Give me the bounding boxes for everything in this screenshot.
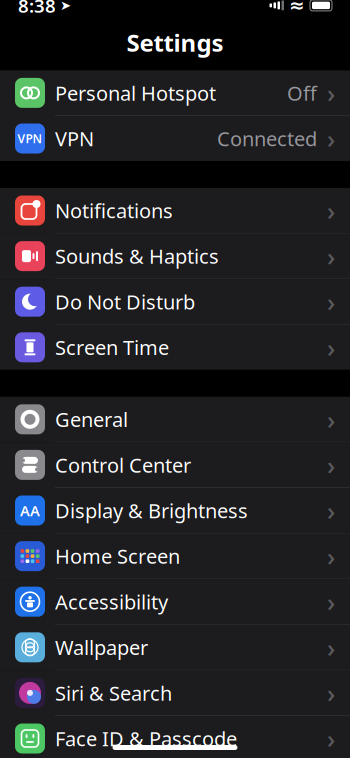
button[interactable]: Siri & Search bbox=[0, 670, 350, 716]
staticText: Control Center bbox=[55, 452, 191, 478]
staticText: Screen Time bbox=[55, 334, 169, 361]
staticText: › bbox=[327, 539, 335, 573]
staticText: › bbox=[327, 630, 335, 664]
staticText: Display & Brightness bbox=[55, 497, 248, 524]
staticText: › bbox=[327, 285, 335, 318]
button[interactable]: Face ID & Passcode bbox=[0, 716, 350, 758]
button[interactable]: Wallpaper bbox=[0, 625, 350, 670]
button[interactable]: Sounds & Haptics bbox=[0, 234, 350, 279]
staticText: Accessibility bbox=[55, 588, 168, 615]
button[interactable]: Home Screen bbox=[0, 534, 350, 579]
button[interactable]: Do Not Disturb bbox=[0, 279, 350, 325]
staticText: Connected bbox=[217, 125, 317, 152]
staticText: › bbox=[327, 330, 335, 364]
staticText: Personal Hotspot bbox=[55, 80, 216, 106]
staticText: › bbox=[327, 722, 335, 755]
staticText: ≈ bbox=[289, 0, 305, 16]
staticText: Notifications bbox=[55, 197, 173, 224]
button[interactable]: AA bbox=[0, 488, 350, 534]
staticText: VPN bbox=[17, 130, 42, 146]
button[interactable]: General bbox=[0, 397, 350, 442]
staticText: › bbox=[327, 494, 335, 527]
staticText: Siri & Search bbox=[55, 680, 172, 706]
staticText: ➤ bbox=[60, 0, 71, 13]
staticText: 8:38 bbox=[18, 0, 56, 18]
button[interactable]: Personal Hotspot bbox=[0, 70, 350, 116]
staticText: › bbox=[327, 239, 335, 273]
staticText: Settings bbox=[126, 26, 223, 58]
staticText: Off bbox=[287, 80, 317, 106]
staticText: AA bbox=[20, 501, 40, 520]
button[interactable]: Accessibility bbox=[0, 579, 350, 625]
staticText: Sounds & Haptics bbox=[55, 243, 219, 269]
staticText: Face ID & Passcode bbox=[55, 725, 237, 752]
staticText: Do Not Disturb bbox=[55, 288, 195, 315]
staticText: › bbox=[327, 448, 335, 482]
staticText: Wallpaper bbox=[55, 634, 148, 661]
staticText: › bbox=[327, 122, 335, 155]
button[interactable]: Screen Time bbox=[0, 325, 350, 370]
button[interactable]: VPN bbox=[0, 116, 350, 161]
staticText: VPN bbox=[55, 125, 94, 152]
staticText: › bbox=[327, 585, 335, 618]
button[interactable]: Control Center bbox=[0, 442, 350, 488]
staticText: General bbox=[55, 406, 128, 433]
button[interactable]: Notifications bbox=[0, 188, 350, 234]
staticText: › bbox=[327, 194, 335, 227]
staticText: › bbox=[327, 402, 335, 436]
staticText: Home Screen bbox=[55, 543, 180, 569]
staticText: › bbox=[327, 76, 335, 110]
staticText: › bbox=[327, 676, 335, 710]
